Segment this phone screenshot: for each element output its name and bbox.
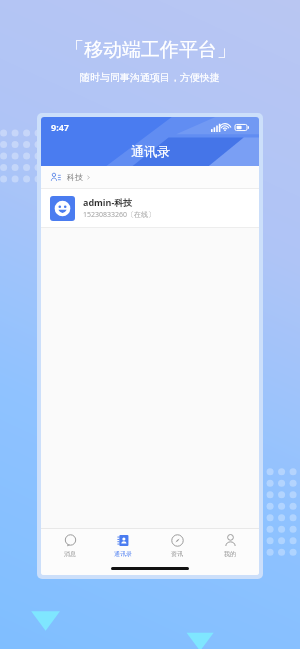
staticText: 科技 xyxy=(67,172,83,182)
staticText: 「移动端工作平台」 xyxy=(65,38,236,62)
staticText: 资讯 xyxy=(171,550,183,558)
staticText: 我的 xyxy=(224,550,236,558)
staticText: admin-科技 xyxy=(83,196,133,208)
staticText: 9:47 xyxy=(51,121,69,133)
staticText: 通讯录 xyxy=(114,550,132,558)
button[interactable]: 我的 xyxy=(205,532,255,560)
button[interactable]: 通讯录 xyxy=(98,532,148,560)
button[interactable]: 消息 xyxy=(45,532,95,560)
staticText: 通讯录 xyxy=(131,143,170,159)
staticText: 15230833260〔在线〕 xyxy=(83,210,156,220)
button[interactable]: 科技 xyxy=(41,166,259,188)
staticText: 消息 xyxy=(64,550,76,558)
button[interactable]: 资讯 xyxy=(152,532,202,560)
staticText: 随时与同事沟通项目，方便快捷 xyxy=(80,71,220,84)
button[interactable]: admin-科技 xyxy=(41,189,259,227)
